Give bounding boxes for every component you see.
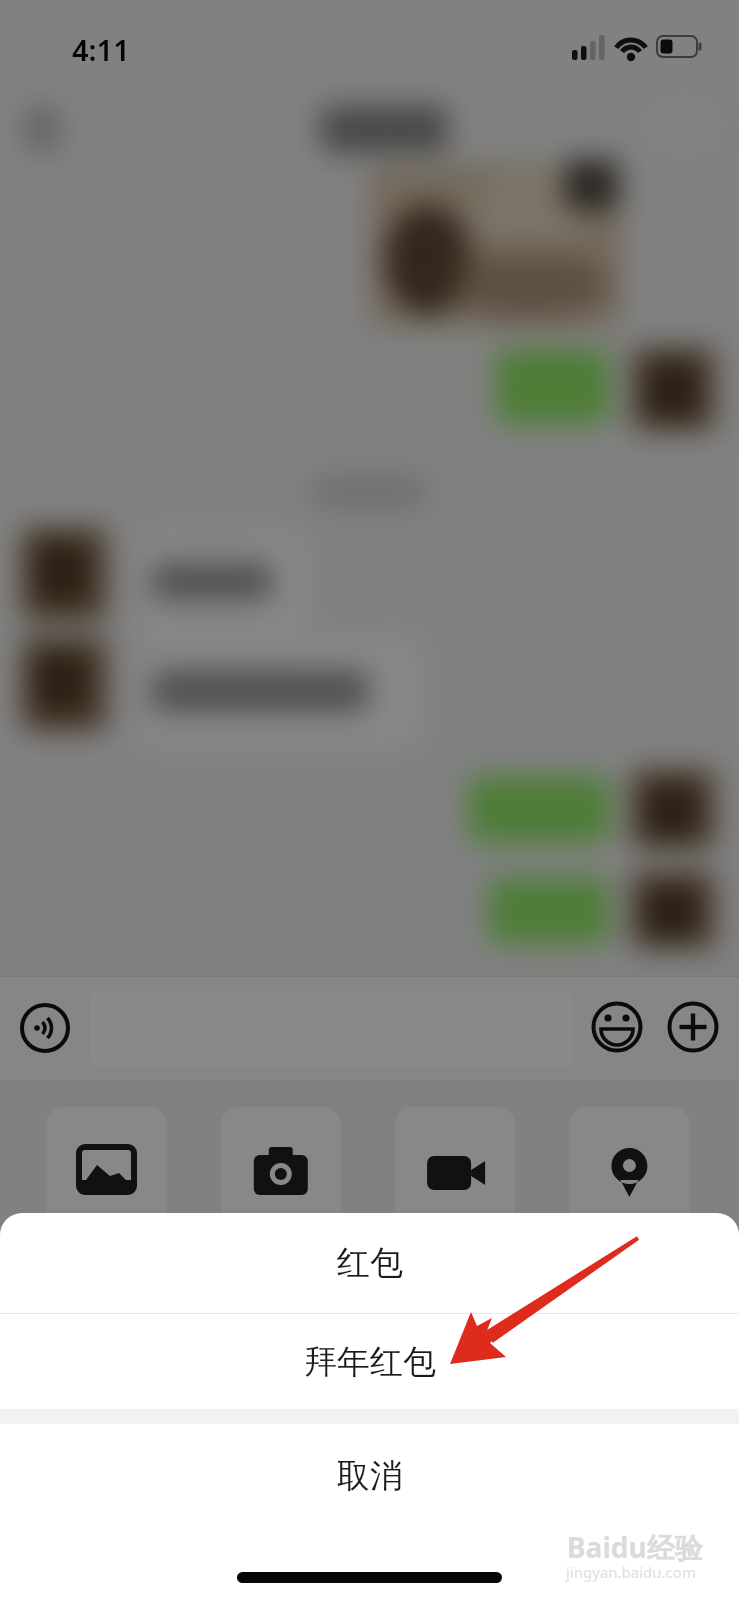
staticText: jingyan.baidu.com xyxy=(566,1562,696,1582)
button[interactable]: 拜年红包 xyxy=(0,1314,739,1409)
button[interactable]: 红包 xyxy=(0,1213,739,1313)
button[interactable]: 取消 xyxy=(0,1424,739,1528)
staticText: 取消 xyxy=(337,1455,403,1497)
staticText: 红包 xyxy=(337,1242,403,1284)
staticText: 拜年红包 xyxy=(304,1341,436,1383)
staticText: 4:11 xyxy=(72,30,130,69)
staticText: Baidu经验 xyxy=(567,1528,703,1566)
